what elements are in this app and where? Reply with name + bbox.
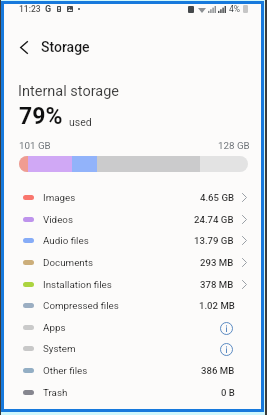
staticText: 13.79 GB — [194, 235, 234, 246]
staticText: Images — [43, 192, 76, 203]
staticText: Installation files — [43, 279, 112, 290]
button[interactable]: Back — [11, 34, 37, 60]
staticText: Videos — [43, 214, 73, 225]
staticText: 4.65 GB — [200, 192, 234, 203]
staticText: Documents — [43, 257, 94, 268]
button[interactable]: Other files — [4, 359, 261, 381]
button[interactable]: Images — [4, 186, 261, 208]
staticText: 293 MB — [200, 257, 234, 268]
staticText: System — [43, 343, 76, 354]
staticText: Apps — [43, 322, 66, 333]
staticText: Other files — [43, 365, 88, 376]
button[interactable]: Trash — [4, 381, 261, 403]
staticText: Audio files — [43, 235, 89, 246]
staticText: 79% — [19, 103, 63, 130]
staticText: 0 B — [221, 387, 235, 398]
button[interactable]: Audio files — [4, 229, 261, 251]
staticText: 1.02 MB — [199, 300, 235, 311]
button[interactable]: Installation files — [4, 273, 261, 295]
staticText: 101 GB — [19, 140, 51, 151]
staticText: 24.74 GB — [194, 214, 234, 225]
staticText: Trash — [43, 387, 68, 398]
staticText: 378 MB — [200, 279, 234, 290]
staticText: Compressed files — [43, 300, 119, 311]
staticText: Storage — [41, 39, 90, 55]
button[interactable]: Apps — [4, 316, 261, 338]
staticText: Internal storage — [18, 83, 120, 100]
staticText: 386 MB — [201, 365, 235, 376]
button[interactable]: Documents — [4, 251, 261, 273]
button[interactable]: Compressed files — [4, 294, 261, 316]
button[interactable]: System — [4, 337, 261, 359]
staticText: used — [69, 116, 92, 128]
staticText: 11:23 — [19, 4, 41, 14]
button[interactable]: Videos — [4, 208, 261, 230]
staticText: G — [45, 4, 52, 14]
staticText: 128 GB — [218, 140, 250, 151]
staticText: 4% — [229, 4, 241, 14]
